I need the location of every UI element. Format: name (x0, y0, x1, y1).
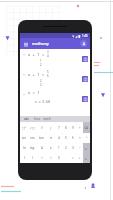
staticText: ⌫ (84, 126, 89, 129)
staticText: 6 (47, 74, 49, 78)
staticText: 2 (65, 146, 67, 150)
button[interactable]: math (42, 116, 52, 122)
button[interactable]: > (46, 153, 55, 163)
staticText: 3 (47, 50, 49, 54)
button[interactable]: func (32, 116, 42, 122)
staticText: 9 (72, 126, 74, 130)
button[interactable]: 2 (62, 143, 69, 153)
staticText: ∫ (50, 126, 52, 129)
button[interactable]: x = 1 (20, 89, 90, 109)
button[interactable]: + (76, 153, 83, 163)
staticText: 3 (40, 83, 42, 87)
staticText: e (50, 146, 52, 150)
staticText: = (72, 156, 74, 160)
staticText: 4 (47, 54, 49, 58)
button[interactable]: ↵ (83, 143, 90, 153)
button[interactable]: ^ (83, 133, 90, 143)
button[interactable]: 3 (69, 143, 76, 153)
staticText: 2 (40, 63, 42, 67)
button[interactable]: tan (37, 133, 46, 143)
staticText: ↵ (85, 157, 88, 160)
staticText: ↵ (85, 147, 88, 150)
staticText: tan (39, 136, 44, 140)
staticText: ln (23, 146, 26, 150)
button[interactable]: 8 (62, 122, 69, 133)
button[interactable]: 1 (55, 143, 62, 153)
other: Profile (90, 183, 96, 189)
button[interactable]: x + 1 = (20, 49, 90, 69)
button[interactable]: < (37, 153, 46, 163)
button[interactable]: π (46, 133, 55, 143)
button[interactable]: = (69, 153, 76, 163)
button[interactable]: ∫ (46, 122, 55, 133)
staticText: × (79, 136, 81, 140)
staticText: < (41, 156, 43, 160)
staticText: 8 (65, 126, 67, 130)
staticText: √□ (30, 126, 35, 129)
button[interactable]: □² (20, 122, 28, 133)
staticText: 6 (72, 136, 74, 140)
button[interactable]: 4 (55, 133, 62, 143)
staticText: 3 (72, 146, 74, 150)
button[interactable]: ÷ (76, 122, 83, 133)
button[interactable]: 7 (55, 122, 62, 133)
staticText: x = 1 (28, 90, 41, 95)
staticText: ^ (86, 136, 88, 140)
staticText: ( (24, 156, 25, 160)
button[interactable]: Δ (37, 143, 46, 153)
button[interactable]: Show steps (82, 96, 88, 102)
staticText: > (50, 156, 52, 160)
staticText: 5 (47, 70, 49, 74)
button[interactable]: Open navigation menu (23, 41, 29, 47)
staticText: log (30, 146, 35, 150)
staticText: math (43, 117, 51, 121)
staticText: x + 1 = (28, 72, 45, 77)
button[interactable]: sin (20, 133, 28, 143)
button[interactable]: mathway (32, 41, 49, 46)
staticText: 0 (58, 156, 60, 160)
staticText: − (79, 146, 81, 150)
staticText: + (79, 156, 81, 160)
staticText: π (50, 136, 52, 140)
staticText: cos (30, 136, 35, 140)
staticText: 1 (58, 146, 60, 150)
button[interactable]: Account (80, 40, 87, 47)
staticText: 2 (40, 79, 42, 83)
button[interactable]: e (46, 143, 55, 153)
staticText: ÷ (79, 126, 81, 130)
button[interactable]: ( (20, 153, 28, 163)
staticText: □² (22, 126, 26, 130)
staticText: 4 (58, 136, 60, 140)
button[interactable]: log (28, 143, 37, 153)
button[interactable]: − (76, 143, 83, 153)
button[interactable]: ln (20, 143, 28, 153)
staticText: 1:45 (82, 34, 88, 38)
staticText: 1 (40, 59, 42, 63)
button[interactable]: 0 (55, 153, 62, 163)
button[interactable]: Show steps (82, 76, 88, 82)
staticText: Δ (41, 146, 43, 150)
button[interactable]: 9 (69, 122, 76, 133)
staticText: abc (24, 117, 30, 121)
button[interactable]: x + 1 = (20, 69, 90, 89)
staticText: mathway (32, 41, 49, 46)
button[interactable]: ⌫ (83, 122, 90, 133)
button[interactable]: 5 (62, 133, 69, 143)
button[interactable]: abc (22, 116, 32, 122)
staticText: x ≈ 0.68 (35, 100, 51, 104)
button[interactable]: × (76, 133, 83, 143)
staticText: x + 1 = (28, 52, 45, 57)
button[interactable]: ) (28, 153, 37, 163)
button[interactable]: Show steps (82, 56, 88, 62)
staticText: func (34, 117, 41, 121)
button[interactable]: ↵ (83, 153, 90, 163)
button[interactable]: 6 (69, 133, 76, 143)
button[interactable]: cos (28, 133, 37, 143)
staticText: ∛ (41, 126, 43, 129)
button[interactable]: √□ (28, 122, 37, 133)
staticText: 7 (58, 126, 60, 130)
staticText: ) (32, 156, 33, 160)
button[interactable]: ∛ (37, 122, 46, 133)
staticText: . (65, 156, 66, 160)
